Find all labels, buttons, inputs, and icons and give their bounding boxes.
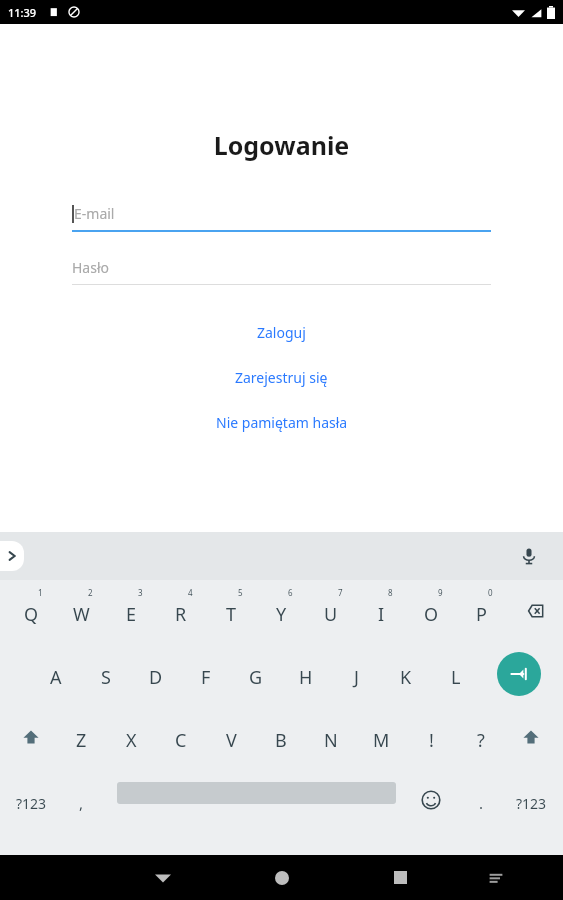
button[interactable]: 8 bbox=[356, 580, 406, 642]
staticText: X bbox=[126, 728, 137, 753]
staticText: Zarejestruj się bbox=[235, 368, 328, 387]
button[interactable]: M bbox=[356, 706, 406, 768]
staticText: E bbox=[126, 602, 137, 627]
button[interactable]: J bbox=[331, 643, 381, 705]
button[interactable]: F bbox=[181, 643, 231, 705]
staticText: G bbox=[249, 665, 263, 690]
staticText: ? bbox=[477, 728, 485, 753]
staticText: 8 bbox=[388, 587, 393, 598]
button[interactable]: 1 bbox=[6, 580, 56, 642]
staticText: 9 bbox=[438, 587, 443, 598]
staticText: R bbox=[175, 602, 187, 627]
staticText: ! bbox=[429, 728, 434, 753]
button[interactable]: ?123 bbox=[506, 769, 556, 831]
staticText: Logowanie bbox=[0, 128, 563, 162]
button[interactable]: B bbox=[256, 706, 306, 768]
button[interactable]: Hasło bbox=[72, 258, 491, 285]
staticText: O bbox=[424, 602, 439, 627]
staticText: 11:39 bbox=[8, 5, 37, 20]
button[interactable]: A bbox=[31, 643, 81, 705]
button[interactable]: S bbox=[81, 643, 131, 705]
button[interactable]: 2 bbox=[56, 580, 106, 642]
button[interactable]: Shift bbox=[506, 706, 556, 768]
button[interactable]: Zarejestruj się bbox=[0, 366, 563, 389]
staticText: A bbox=[50, 665, 62, 690]
staticText: , bbox=[79, 793, 84, 813]
button[interactable]: 3 bbox=[106, 580, 156, 642]
staticText: E-mail bbox=[74, 204, 115, 223]
staticText: J bbox=[354, 665, 359, 690]
button[interactable]: Nie pamiętam hasła bbox=[0, 411, 563, 434]
staticText: Nie pamiętam hasła bbox=[216, 413, 348, 432]
button[interactable]: L bbox=[431, 643, 481, 705]
staticText: K bbox=[400, 665, 412, 690]
staticText: U bbox=[324, 602, 338, 627]
staticText: Y bbox=[276, 602, 287, 627]
staticText: C bbox=[175, 728, 187, 753]
staticText: ?123 bbox=[16, 794, 47, 813]
button[interactable]: . bbox=[456, 769, 506, 831]
button[interactable]: H bbox=[281, 643, 331, 705]
button[interactable]: 6 bbox=[256, 580, 306, 642]
staticText: N bbox=[324, 728, 338, 753]
staticText: ?123 bbox=[516, 794, 547, 813]
button[interactable]: G bbox=[231, 643, 281, 705]
staticText: T bbox=[226, 602, 237, 627]
staticText: I bbox=[378, 602, 385, 627]
button[interactable]: C bbox=[156, 706, 206, 768]
staticText: P bbox=[476, 602, 487, 627]
button[interactable]: Recent apps bbox=[378, 855, 423, 900]
button[interactable]: 7 bbox=[306, 580, 356, 642]
staticText: 6 bbox=[288, 587, 293, 598]
button[interactable]: X bbox=[106, 706, 156, 768]
button[interactable]: Z bbox=[56, 706, 106, 768]
button[interactable]: 0 bbox=[456, 580, 506, 642]
staticText: M bbox=[373, 728, 390, 753]
button[interactable]: ?123 bbox=[6, 769, 56, 831]
staticText: 7 bbox=[338, 587, 343, 598]
button[interactable]: 9 bbox=[406, 580, 456, 642]
button[interactable]: N bbox=[306, 706, 356, 768]
staticText: H bbox=[299, 665, 313, 690]
staticText: F bbox=[201, 665, 211, 690]
button[interactable]: Voice input bbox=[515, 542, 543, 570]
button[interactable]: ! bbox=[406, 706, 456, 768]
staticText: B bbox=[275, 728, 287, 753]
staticText: W bbox=[73, 602, 90, 627]
staticText: 1 bbox=[38, 587, 43, 598]
button[interactable]: Expand suggestions bbox=[0, 541, 24, 571]
staticText: . bbox=[479, 793, 484, 813]
staticText: 4 bbox=[188, 587, 193, 598]
staticText: Q bbox=[24, 602, 39, 627]
button[interactable]: Zaloguj bbox=[0, 321, 563, 344]
staticText: Hasło bbox=[72, 258, 110, 277]
button[interactable]: 5 bbox=[206, 580, 256, 642]
button[interactable]: Next field bbox=[497, 652, 541, 696]
button[interactable]: ? bbox=[456, 706, 506, 768]
button[interactable]: K bbox=[381, 643, 431, 705]
button[interactable]: Emoji bbox=[406, 769, 456, 831]
button[interactable]: 4 bbox=[156, 580, 206, 642]
staticText: S bbox=[101, 665, 111, 690]
button[interactable]: Backspace bbox=[508, 580, 558, 642]
button[interactable]: Back bbox=[140, 855, 185, 900]
button[interactable]: Home bbox=[259, 855, 304, 900]
staticText: L bbox=[451, 665, 461, 690]
staticText: Zaloguj bbox=[257, 323, 306, 342]
staticText: V bbox=[226, 728, 237, 753]
staticText: D bbox=[149, 665, 163, 690]
button[interactable]: E-mail bbox=[72, 204, 491, 232]
staticText: Z bbox=[76, 728, 87, 753]
staticText: 2 bbox=[88, 587, 93, 598]
button[interactable]: D bbox=[131, 643, 181, 705]
staticText: 3 bbox=[138, 587, 143, 598]
staticText: 0 bbox=[488, 587, 493, 598]
staticText: 5 bbox=[238, 587, 243, 598]
button[interactable]: V bbox=[206, 706, 256, 768]
button[interactable]: , bbox=[56, 769, 106, 831]
button[interactable]: Shift bbox=[6, 706, 56, 768]
button[interactable]: Switch keyboard bbox=[473, 855, 518, 900]
